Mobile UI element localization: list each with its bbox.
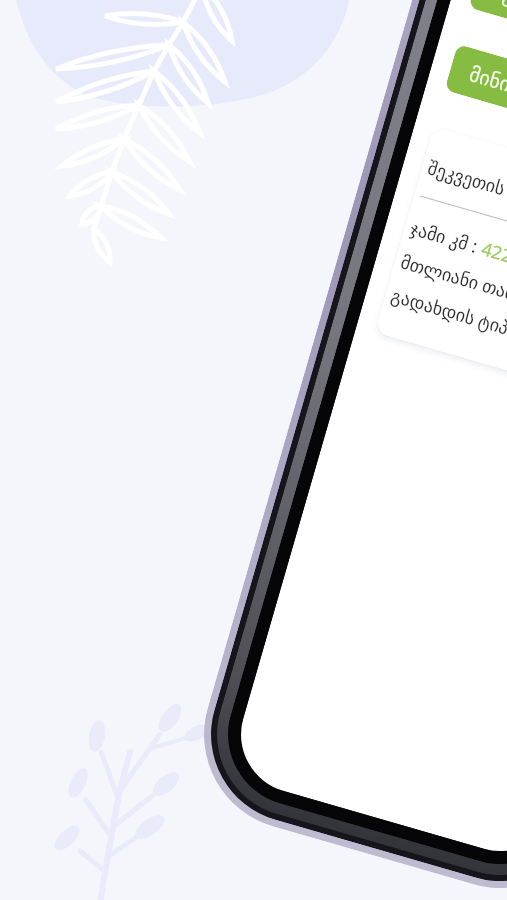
staticText: მთლიანი თანხა : 450 — [398, 249, 507, 324]
staticText: შეკვეთის დეტალები — [425, 155, 507, 228]
staticText: გადახდის ტიპი : ქეში — [388, 283, 507, 357]
staticText: მინიფურგონი — [467, 62, 507, 121]
staticText: ჯამი კმ : — [407, 216, 485, 260]
staticText: 422 — [478, 236, 507, 269]
button[interactable]: ავტომობილი — [468, 0, 507, 87]
button[interactable]: მინიფურგონი — [444, 44, 507, 170]
staticText: ავტომობილი — [491, 0, 507, 37]
